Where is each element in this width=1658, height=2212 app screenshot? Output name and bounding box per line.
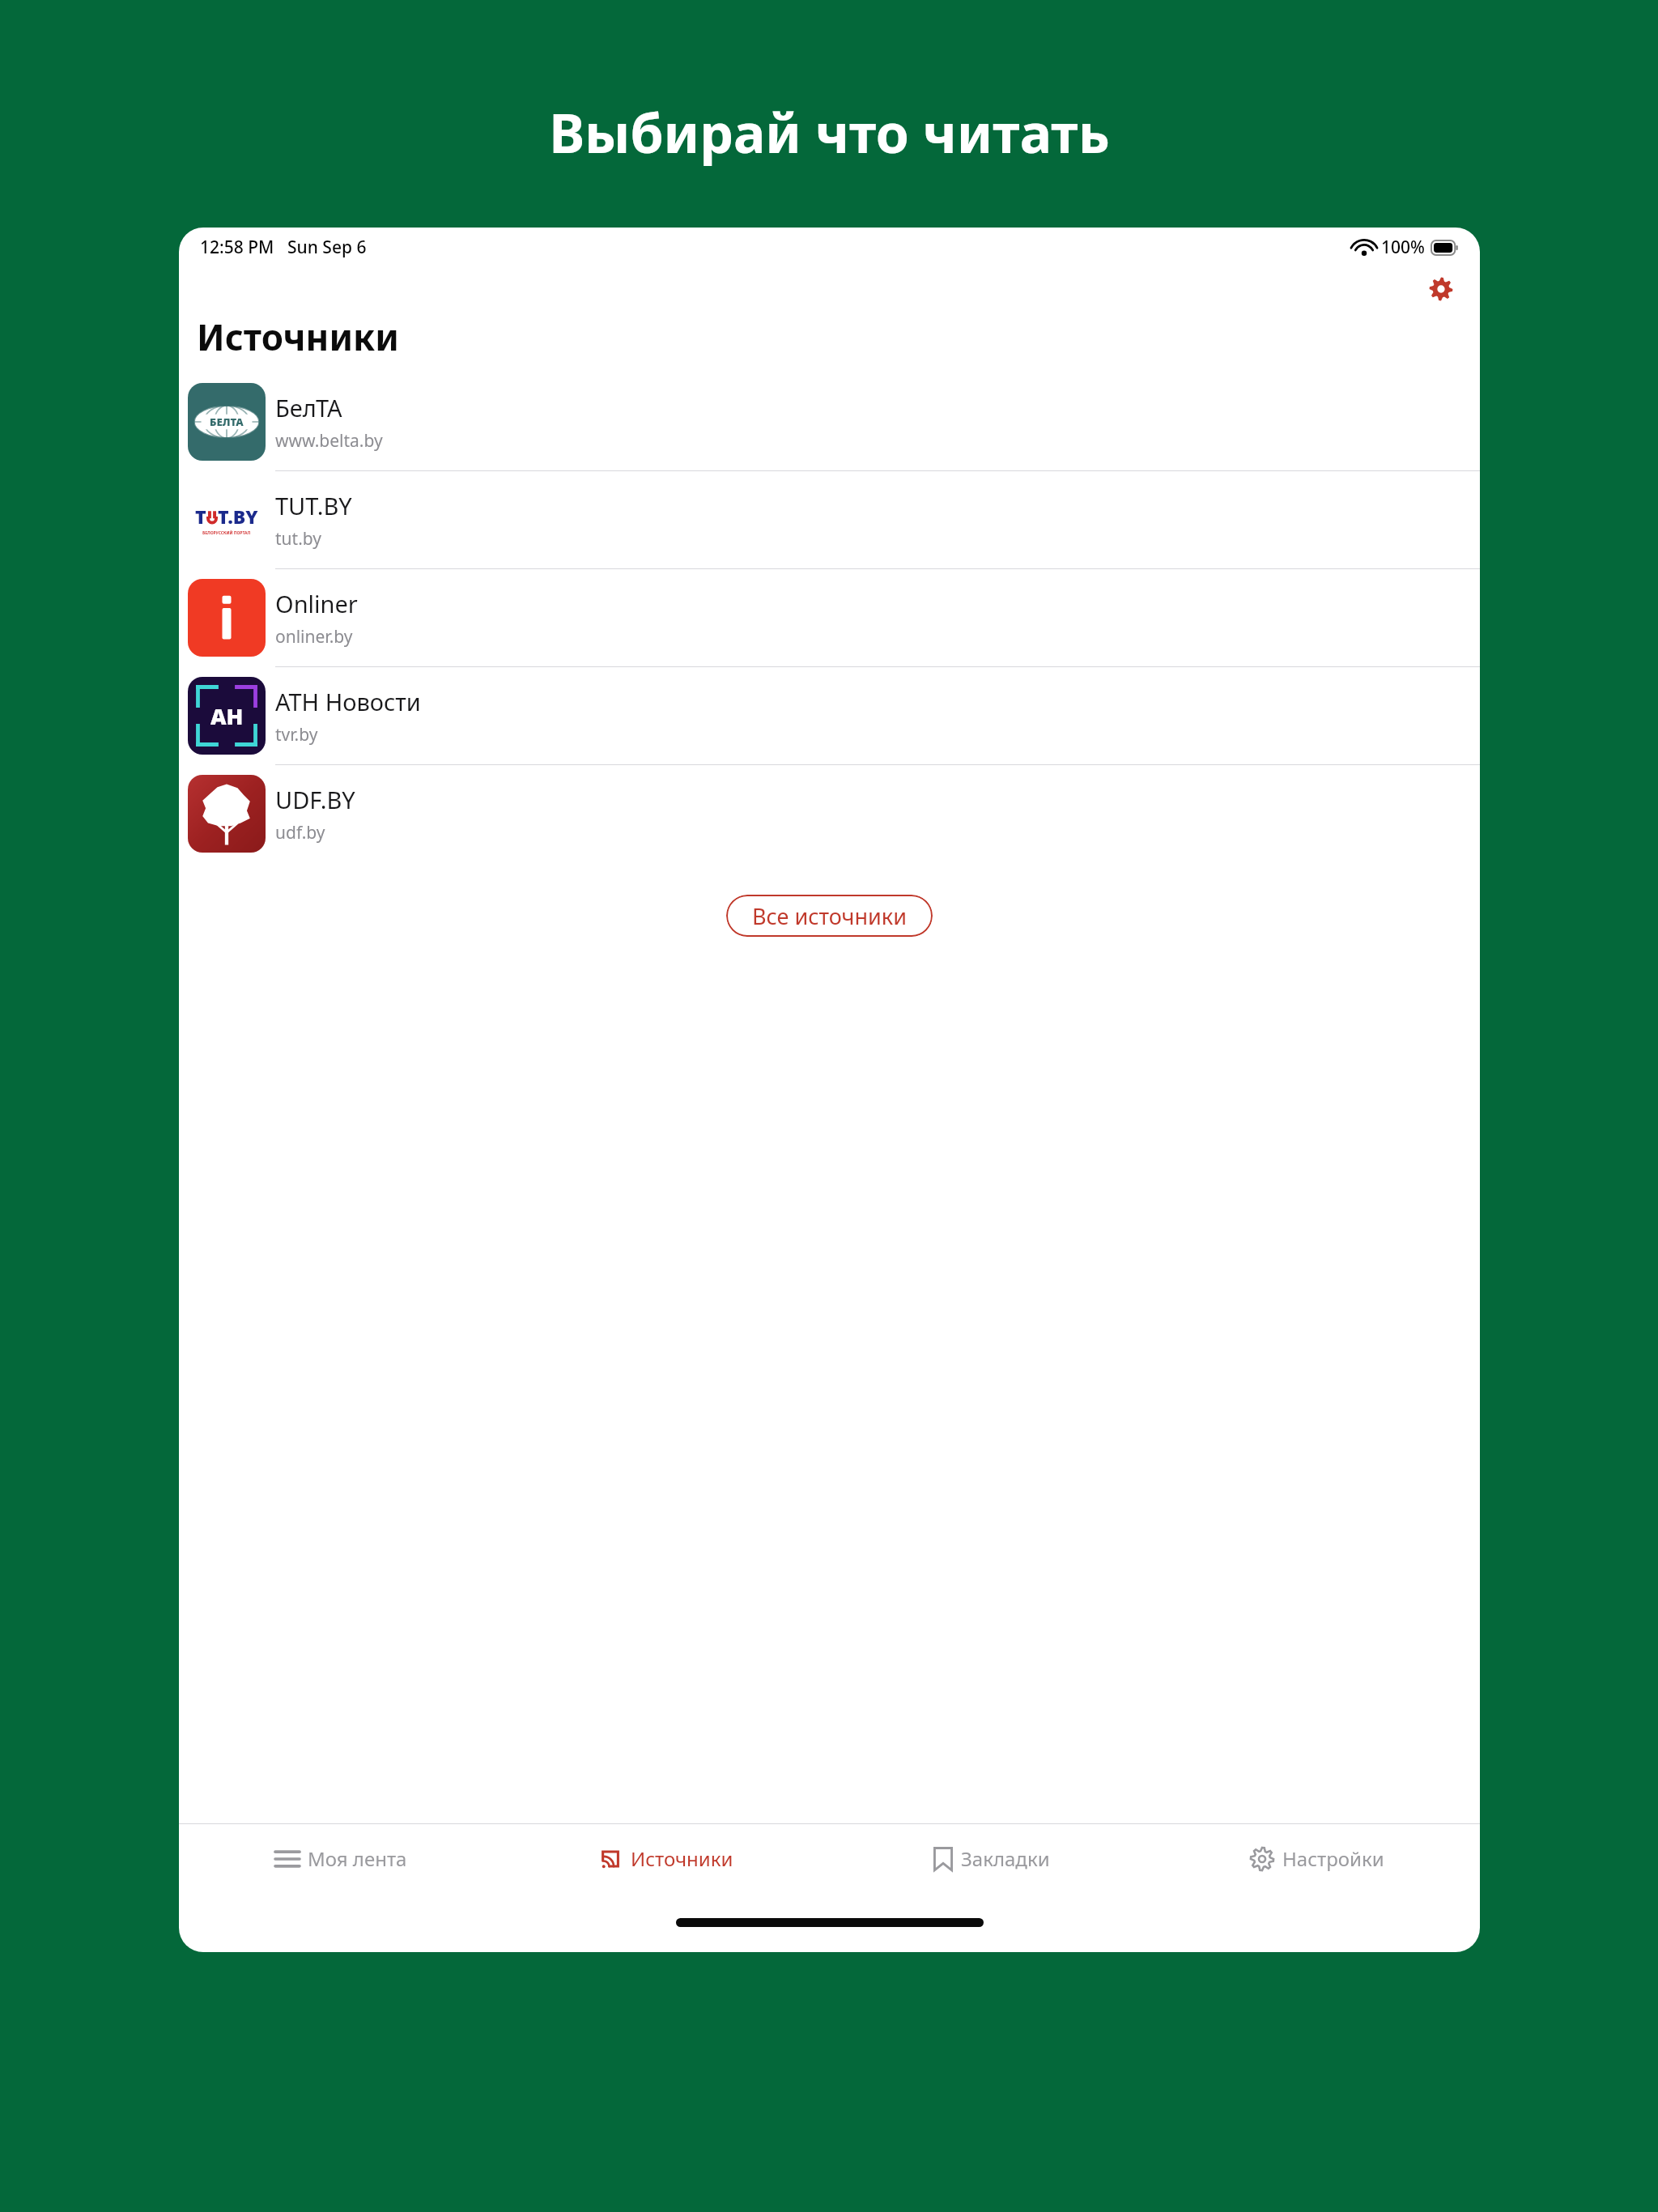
staticText: UDF.BY [275, 784, 355, 815]
button[interactable]: T [179, 471, 1480, 568]
button[interactable]: UDF.BY [179, 765, 1480, 862]
staticText: Моя лента [308, 1845, 407, 1872]
staticText: Выбирай что читать [549, 96, 1110, 168]
button[interactable]: Onliner [179, 569, 1480, 666]
staticText: 100% [1381, 236, 1425, 259]
staticText: T [195, 504, 206, 529]
staticText: Sun Sep 6 [287, 236, 367, 259]
staticText: АТН Новости [275, 686, 421, 717]
staticText: TUT.BY [275, 490, 352, 521]
staticText: Источники [197, 313, 399, 361]
button[interactable]: БЕЛТА [179, 373, 1480, 470]
staticText: tut.by [275, 527, 321, 551]
button[interactable]: Источники [504, 1824, 829, 1918]
staticText: БЕЛОРУССКИЙ ПОРТАЛ [202, 530, 251, 536]
button[interactable]: Закладки [829, 1824, 1154, 1918]
staticText: БЕЛТА [210, 415, 244, 429]
staticText: T.BY [218, 504, 258, 529]
staticText: Все источники [752, 901, 907, 931]
button[interactable]: АН [179, 667, 1480, 764]
staticText: udf.by [275, 821, 325, 844]
staticText: Закладки [961, 1845, 1050, 1872]
staticText: БелТА [275, 392, 342, 423]
staticText: Настройки [1282, 1845, 1384, 1872]
button[interactable]: Settings [1423, 271, 1459, 307]
staticText: Источники [631, 1845, 733, 1872]
staticText: tvr.by [275, 723, 318, 747]
button[interactable]: Все источники [726, 895, 933, 937]
button[interactable]: Настройки [1154, 1824, 1480, 1918]
staticText: 12:58 PM [200, 236, 274, 259]
staticText: onliner.by [275, 625, 353, 649]
staticText: Onliner [275, 588, 358, 619]
button[interactable]: Моя лента [179, 1824, 504, 1918]
staticText: АН [210, 701, 244, 731]
staticText: www.belta.by [275, 429, 383, 453]
